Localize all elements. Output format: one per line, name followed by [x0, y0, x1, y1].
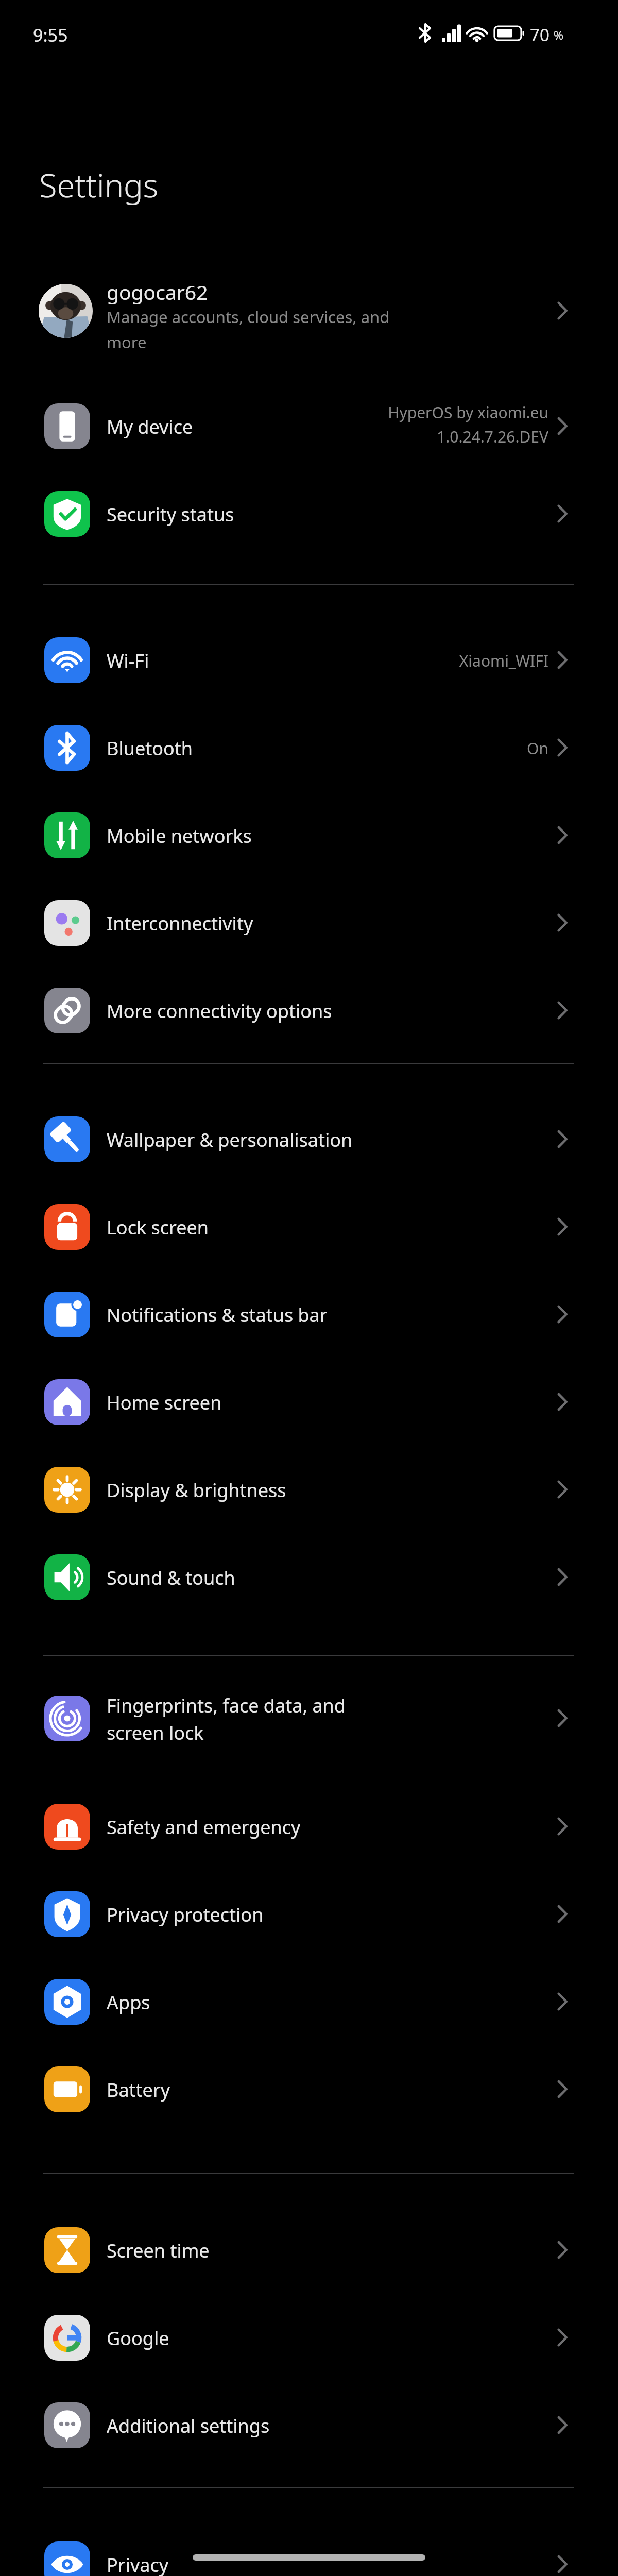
button[interactable]: Privacy protection	[0, 1870, 618, 1958]
staticText: On	[268, 738, 548, 759]
staticText: Battery	[107, 2077, 170, 2103]
staticText: gogocar62	[107, 278, 208, 306]
staticText: %	[554, 27, 564, 43]
button[interactable]: Sound & touch	[0, 1533, 618, 1621]
button[interactable]: Display & brightness	[0, 1446, 618, 1533]
staticText: Bluetooth	[107, 736, 193, 761]
staticText: Privacy protection	[107, 1902, 264, 1927]
button[interactable]: My device	[0, 382, 618, 470]
staticText: 9:55	[33, 23, 68, 47]
other: Security status	[44, 491, 90, 537]
staticText: Apps	[107, 1990, 150, 2015]
other: Battery	[44, 2066, 90, 2112]
staticText: Lock screen	[107, 1215, 209, 1240]
staticText: Fingerprints, face data, and screen lock	[107, 1693, 346, 1745]
other: Fingerprints, face data, and screen lock	[44, 1696, 90, 1741]
other: Mobile networks	[44, 812, 90, 858]
staticText: Manage accounts, cloud services, and mor…	[107, 306, 498, 353]
staticText: More connectivity options	[107, 998, 332, 1024]
button[interactable]: Notifications & status bar	[0, 1270, 618, 1358]
other: Wi-Fi	[44, 637, 90, 683]
other: Apps	[44, 1979, 90, 2025]
other: Sound & touch	[44, 1554, 90, 1600]
other: Additional settings	[44, 2402, 90, 2448]
other: Privacy protection	[44, 1891, 90, 1937]
other: Display & brightness	[44, 1467, 90, 1513]
other: Google	[44, 2315, 90, 2361]
staticText: Screen time	[107, 2238, 210, 2263]
button[interactable]: Home screen	[0, 1358, 618, 1446]
button[interactable]: More connectivity options	[0, 967, 618, 1054]
other: Interconnectivity	[44, 900, 90, 946]
button[interactable]: Mobile networks	[0, 791, 618, 879]
other: Screen time	[44, 2227, 90, 2273]
staticText: Xiaomi_WIFI	[268, 650, 548, 671]
button[interactable]: Battery	[0, 2045, 618, 2133]
other: Lock screen	[44, 1204, 90, 1250]
staticText: Safety and emergency	[107, 1815, 301, 1840]
other: Safety and emergency	[44, 1804, 90, 1850]
staticText: Security status	[107, 502, 234, 527]
button[interactable]: gogocar62	[0, 267, 618, 357]
other: Home screen	[44, 1379, 90, 1425]
staticText: HyperOS by xiaomi.eu 1.0.24.7.26.DEV	[268, 402, 548, 447]
button[interactable]: Interconnectivity	[0, 879, 618, 967]
other: Privacy	[44, 2541, 90, 2576]
other: Bluetooth	[44, 725, 90, 771]
button[interactable]: Google	[0, 2294, 618, 2381]
button[interactable]: Screen time	[0, 2206, 618, 2294]
button[interactable]: Wi-Fi	[0, 616, 618, 704]
staticText: Interconnectivity	[107, 911, 253, 936]
staticText: My device	[107, 414, 193, 439]
button[interactable]: Bluetooth	[0, 704, 618, 791]
other: Notifications & status bar	[44, 1292, 90, 1337]
button[interactable]: Fingerprints, face data, and screen lock	[0, 1674, 618, 1762]
staticText: Mobile networks	[107, 823, 252, 849]
staticText: 70	[530, 23, 550, 46]
staticText: Home screen	[107, 1390, 222, 1415]
staticText: Additional settings	[107, 2413, 270, 2438]
staticText: Display & brightness	[107, 1478, 286, 1503]
button[interactable]: Lock screen	[0, 1183, 618, 1270]
button[interactable]: Additional settings	[0, 2381, 618, 2469]
button[interactable]: Apps	[0, 1958, 618, 2045]
button[interactable]: Privacy	[0, 2520, 618, 2576]
staticText: Notifications & status bar	[107, 1302, 328, 1328]
staticText: Sound & touch	[107, 1565, 235, 1590]
button[interactable]: Safety and emergency	[0, 1783, 618, 1870]
other: More connectivity options	[44, 988, 90, 1033]
staticText: Wi-Fi	[107, 648, 149, 673]
button[interactable]: Wallpaper & personalisation	[0, 1095, 618, 1183]
staticText: Wallpaper & personalisation	[107, 1127, 353, 1153]
button[interactable]: Security status	[0, 470, 618, 557]
staticText: Privacy	[107, 2552, 169, 2576]
other: My device	[44, 403, 90, 449]
staticText: Google	[107, 2326, 169, 2351]
staticText: Settings	[39, 163, 159, 207]
other: Wallpaper & personalisation	[44, 1116, 90, 1162]
